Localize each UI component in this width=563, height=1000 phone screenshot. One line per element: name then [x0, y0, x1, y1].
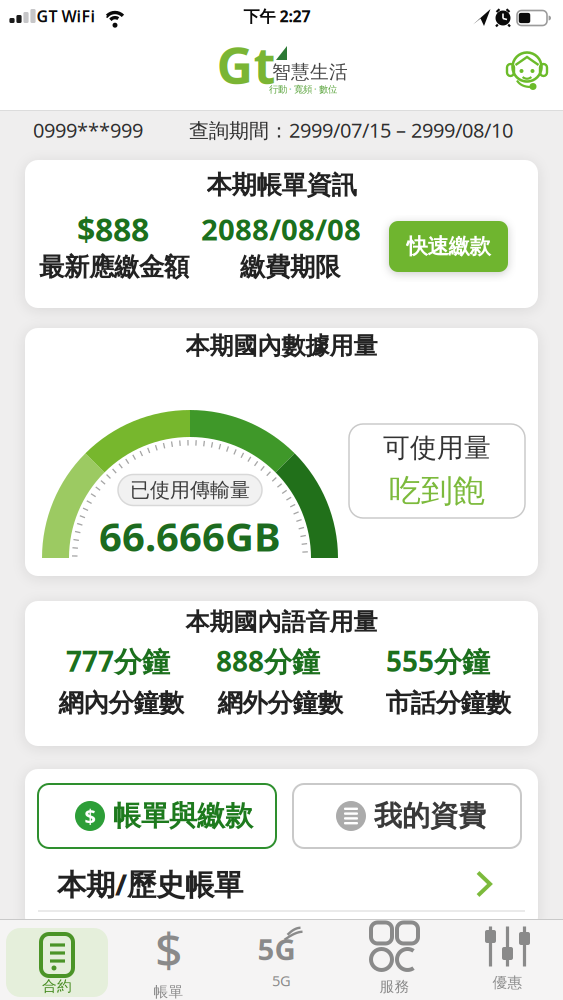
staticText: 555分鐘 — [386, 642, 490, 680]
staticText: 5G — [257, 929, 295, 968]
staticText: 888分鐘 — [216, 642, 320, 680]
staticText: $ — [84, 803, 95, 829]
staticText: 本期國內語音用量 — [185, 607, 377, 637]
staticText: 網外分鐘數 — [217, 687, 342, 718]
button[interactable]: $ — [118, 922, 218, 996]
staticText: 網內分鐘數 — [58, 687, 183, 718]
staticText: 最新應繳金額 — [39, 251, 189, 282]
staticText: GT WiFi — [36, 5, 95, 27]
staticText: 0999***999 — [33, 117, 143, 143]
staticText: 吃到飽 — [389, 471, 485, 510]
staticText: 777分鐘 — [66, 642, 170, 680]
staticText: 本期國內數據用量 — [185, 331, 377, 361]
staticText: 本期帳單資訊 — [206, 169, 356, 200]
staticText: 快速繳款 — [406, 233, 490, 260]
staticText: 66.666GB — [99, 509, 281, 562]
staticText: Gt — [216, 30, 275, 98]
staticText: 繳費期限 — [240, 251, 340, 282]
staticText: 優惠 — [492, 973, 522, 991]
staticText: 5G — [272, 971, 291, 990]
button[interactable]: 服務 — [344, 922, 444, 996]
staticText: 帳單 — [153, 983, 183, 1000]
staticText: 市話分鐘數 — [385, 687, 510, 718]
staticText: 2088/08/08 — [201, 209, 361, 248]
staticText: 可使用量 — [383, 431, 491, 464]
button[interactable]: 5G — [231, 922, 331, 996]
staticText: 智慧生活 — [272, 60, 348, 83]
button[interactable]: 我的資費 — [293, 784, 521, 848]
button[interactable]: 本期/歷史帳單 — [57, 861, 494, 907]
staticText: 查詢期間：2999/07/15 – 2999/08/10 — [189, 117, 513, 143]
staticText: 本期/歷史帳單 — [57, 864, 243, 903]
button[interactable]: 優惠 — [457, 922, 557, 996]
staticText: 下午 2:27 — [243, 5, 310, 27]
staticText: $888 — [77, 208, 149, 250]
staticText: 行動 · 寬頻 · 數位 — [269, 83, 337, 95]
button[interactable]: 客服 — [503, 45, 551, 93]
staticText: 我的資費 — [374, 799, 486, 833]
button[interactable]: 快速繳款 — [389, 221, 508, 272]
staticText: 合約 — [42, 977, 72, 995]
staticText: 服務 — [379, 977, 409, 995]
staticText: 帳單與繳款 — [113, 799, 253, 833]
button[interactable]: 合約 — [6, 928, 108, 997]
staticText: 已使用傳輸量 — [130, 478, 250, 502]
staticText: $ — [155, 917, 182, 981]
button[interactable]: $ — [38, 784, 276, 848]
